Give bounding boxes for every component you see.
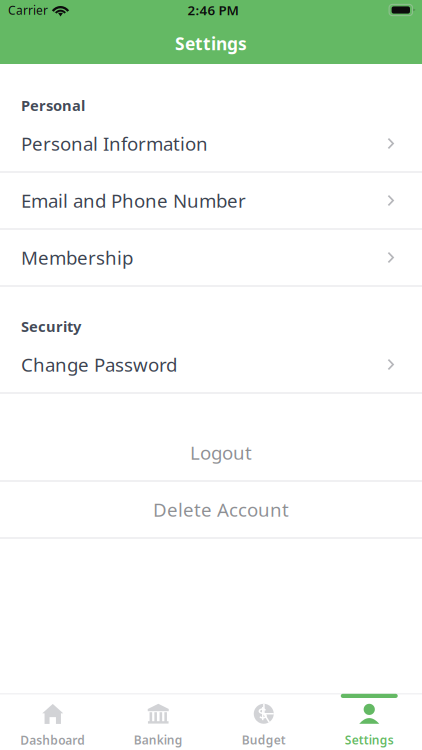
button[interactable]: Delete Account: [0, 482, 422, 539]
button[interactable]: Settings: [316, 694, 422, 750]
button[interactable]: Logout: [0, 425, 422, 482]
button[interactable]: Membership: [0, 230, 422, 287]
button[interactable]: Dashboard: [0, 694, 105, 750]
staticText: Settings: [175, 32, 247, 55]
staticText: Membership: [21, 245, 133, 270]
staticText: 2:46 PM: [187, 1, 238, 19]
button[interactable]: Email and Phone Number: [0, 173, 422, 230]
staticText: Change Password: [21, 352, 177, 377]
button[interactable]: Banking: [105, 694, 211, 750]
staticText: Carrier: [8, 2, 48, 18]
staticText: Settings: [345, 732, 394, 748]
staticText: Personal: [21, 95, 85, 115]
staticText: Dashboard: [20, 732, 85, 748]
button[interactable]: Change Password: [0, 337, 422, 394]
staticText: Budget: [242, 732, 286, 748]
staticText: Security: [21, 316, 81, 336]
staticText: Delete Account: [153, 497, 289, 522]
staticText: Personal Information: [21, 131, 208, 156]
button[interactable]: Personal Information: [0, 116, 422, 173]
staticText: Banking: [134, 732, 183, 748]
staticText: Email and Phone Number: [21, 188, 246, 213]
button[interactable]: Budget: [211, 694, 316, 750]
staticText: Logout: [190, 440, 252, 465]
